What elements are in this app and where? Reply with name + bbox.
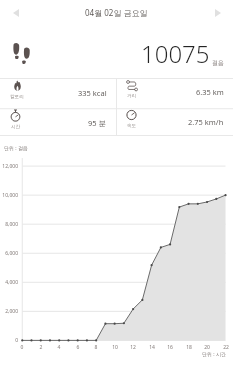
- staticText: 2: [35, 344, 47, 351]
- staticText: 4: [53, 344, 65, 351]
- button[interactable]: Previous day: [6, 3, 26, 23]
- button[interactable]: 칼로리: [0, 78, 116, 99]
- staticText: 6.35 km: [196, 87, 224, 97]
- staticText: 6: [72, 344, 84, 351]
- staticText: 10075: [141, 37, 210, 70]
- staticText: 거리: [127, 93, 137, 99]
- staticText: 20: [201, 344, 213, 351]
- staticText: 10: [109, 344, 121, 351]
- staticText: 2,000: [0, 308, 18, 315]
- staticText: 걸음: [212, 59, 224, 67]
- button[interactable]: 속도: [116, 108, 233, 128]
- staticText: 8: [90, 344, 102, 351]
- staticText: 칼로리: [10, 94, 24, 100]
- staticText: 14: [146, 344, 158, 351]
- button[interactable]: 10075: [0, 24, 233, 78]
- staticText: 4,000: [0, 279, 18, 286]
- button[interactable]: 시간: [0, 108, 116, 129]
- staticText: 12,000: [0, 163, 18, 170]
- staticText: 2.75 km/h: [188, 117, 224, 127]
- staticText: 0: [0, 337, 18, 344]
- staticText: 18: [183, 344, 195, 351]
- staticText: 12: [127, 344, 139, 351]
- staticText: 16: [164, 344, 176, 351]
- staticText: 10,000: [0, 192, 18, 199]
- button[interactable]: 거리: [116, 78, 233, 97]
- staticText: 시간: [11, 124, 21, 130]
- staticText: 95 분: [88, 118, 107, 128]
- staticText: 22: [220, 344, 232, 351]
- staticText: 8,000: [0, 221, 18, 228]
- staticText: 0: [16, 344, 28, 351]
- staticText: 335 kcal: [78, 88, 107, 98]
- staticText: 단위 : 시간: [202, 351, 226, 358]
- staticText: 04월 02일 금요일: [85, 7, 148, 18]
- staticText: 속도: [127, 123, 137, 129]
- staticText: 6,000: [0, 250, 18, 257]
- button[interactable]: Next day: [208, 3, 228, 23]
- staticText: 단위 : 걸음: [4, 145, 28, 152]
